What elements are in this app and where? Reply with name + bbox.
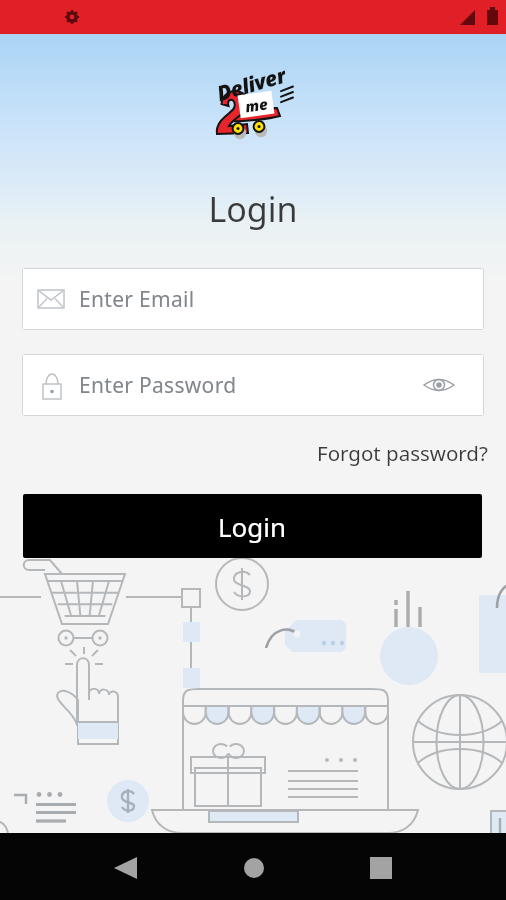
staticText: Forgot password? [317, 439, 488, 467]
button[interactable]: Recent apps [356, 843, 405, 892]
button[interactable]: Home [229, 843, 278, 892]
button[interactable]: Enter Password [22, 354, 484, 416]
button[interactable]: Back [100, 843, 149, 892]
staticText: me [244, 93, 269, 116]
button[interactable]: Forgot password? [315, 437, 490, 469]
staticText: Login [0, 186, 506, 232]
staticText: Login [218, 509, 287, 544]
button[interactable]: Login [23, 494, 482, 558]
staticText: Enter Email [79, 285, 195, 314]
button[interactable]: Enter Email [22, 268, 484, 330]
staticText: Enter Password [79, 371, 237, 400]
staticText: Deliver [213, 61, 290, 108]
